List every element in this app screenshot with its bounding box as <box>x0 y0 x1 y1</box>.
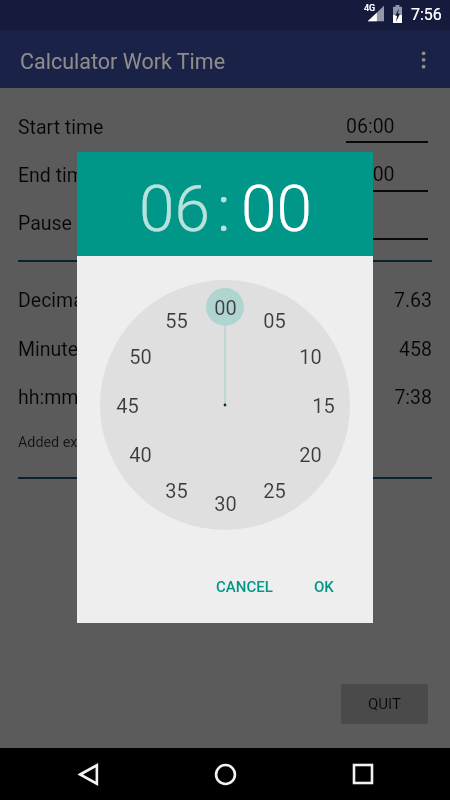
button[interactable] <box>0 285 450 333</box>
staticText: End time <box>18 164 95 187</box>
staticText: CANCEL <box>216 578 273 596</box>
staticText: 06:00 <box>346 115 395 138</box>
staticText: 55 <box>165 309 188 332</box>
staticText: 20 <box>299 443 322 466</box>
button[interactable]: CANCEL <box>206 569 282 605</box>
button[interactable]: Back <box>64 750 112 798</box>
staticText: 50 <box>129 345 152 368</box>
staticText: 458 <box>399 338 432 361</box>
button[interactable]: 00 <box>232 160 322 248</box>
staticText: 05 <box>263 309 286 332</box>
staticText: hh:mm <box>18 386 79 409</box>
staticText: 7:38 <box>394 386 432 409</box>
staticText: 06 <box>139 172 210 247</box>
button[interactable]: 35 <box>154 476 198 504</box>
button[interactable]: 25 <box>252 476 296 504</box>
button[interactable]: 50 <box>118 342 162 370</box>
button[interactable] <box>0 160 450 208</box>
staticText: 00 <box>241 172 312 247</box>
button[interactable]: 15 <box>301 391 345 419</box>
button[interactable] <box>0 208 450 256</box>
staticText: 00 <box>214 296 237 319</box>
staticText: 7.63 <box>393 289 432 312</box>
staticText: 10 <box>299 345 322 368</box>
button[interactable]: 55 <box>154 306 198 334</box>
staticText: OK <box>314 578 334 596</box>
staticText: : <box>217 172 231 247</box>
button[interactable] <box>0 112 450 160</box>
staticText: 40 <box>129 443 152 466</box>
button[interactable]: 40 <box>118 440 162 468</box>
staticText: Decimal <box>18 289 89 312</box>
staticText: 7:56 <box>411 5 442 24</box>
staticText: Start time <box>18 116 104 139</box>
staticText: Pause <box>18 212 72 235</box>
button[interactable]: 10 <box>288 342 332 370</box>
button[interactable] <box>0 333 450 381</box>
staticText: Calculator Work Time <box>20 49 226 74</box>
button[interactable]: Home <box>201 750 249 798</box>
staticText: 30 <box>214 492 237 515</box>
staticText: Added extra time <box>18 434 127 451</box>
button[interactable]: 30 <box>203 489 247 517</box>
staticText: 15 <box>312 394 335 417</box>
staticText: Minutes <box>18 338 89 361</box>
button[interactable]: 00 <box>203 293 247 321</box>
button[interactable]: 20 <box>288 440 332 468</box>
staticText: 45 <box>116 394 139 417</box>
button[interactable]: 05 <box>252 306 296 334</box>
button[interactable]: Recent apps <box>339 750 387 798</box>
staticText: 25 <box>263 479 286 502</box>
button[interactable]: OK <box>305 569 343 605</box>
button[interactable]: QUIT <box>341 684 428 724</box>
staticText: QUIT <box>368 695 401 713</box>
button[interactable] <box>0 381 450 429</box>
button[interactable]: 45 <box>105 391 149 419</box>
staticText: 4G <box>364 3 376 14</box>
button[interactable]: More options <box>402 30 448 88</box>
staticText: 35 <box>165 479 188 502</box>
button[interactable]: 06 <box>129 160 219 248</box>
staticText: 14:00 <box>346 163 395 186</box>
